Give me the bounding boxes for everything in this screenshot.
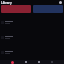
button[interactable] xyxy=(1,45,63,60)
button[interactable] xyxy=(1,5,31,13)
button[interactable] xyxy=(1,14,63,30)
button[interactable]: Profile xyxy=(59,1,62,4)
button[interactable]: Home xyxy=(11,61,14,64)
staticText: Library xyxy=(1,1,12,5)
button[interactable] xyxy=(1,30,63,45)
